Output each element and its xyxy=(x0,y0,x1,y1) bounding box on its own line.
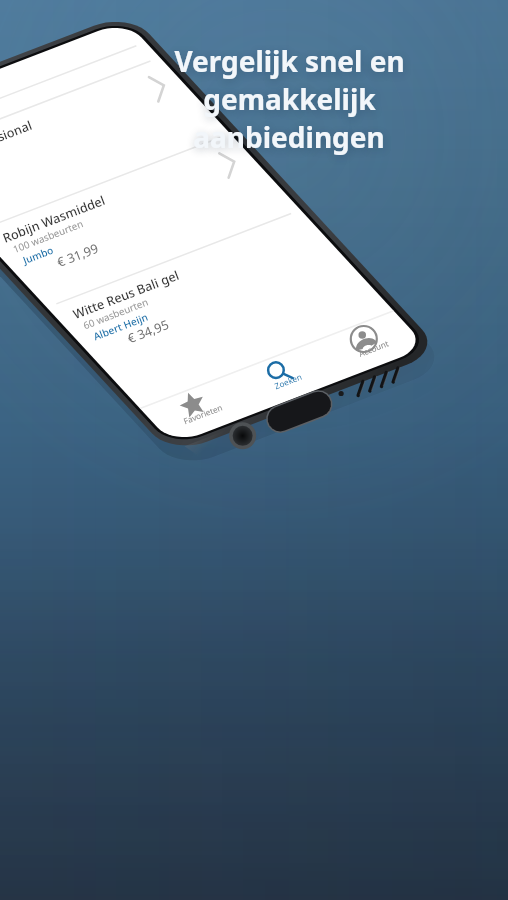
staticText: gemakkelijk xyxy=(203,80,376,118)
button[interactable]: Account xyxy=(329,312,401,368)
staticText: Vergelijk snel en xyxy=(174,42,405,80)
button[interactable]: Zoeken xyxy=(244,345,316,401)
staticText: aanbiedingen xyxy=(193,118,385,156)
button[interactable]: Favorieten xyxy=(158,378,230,434)
